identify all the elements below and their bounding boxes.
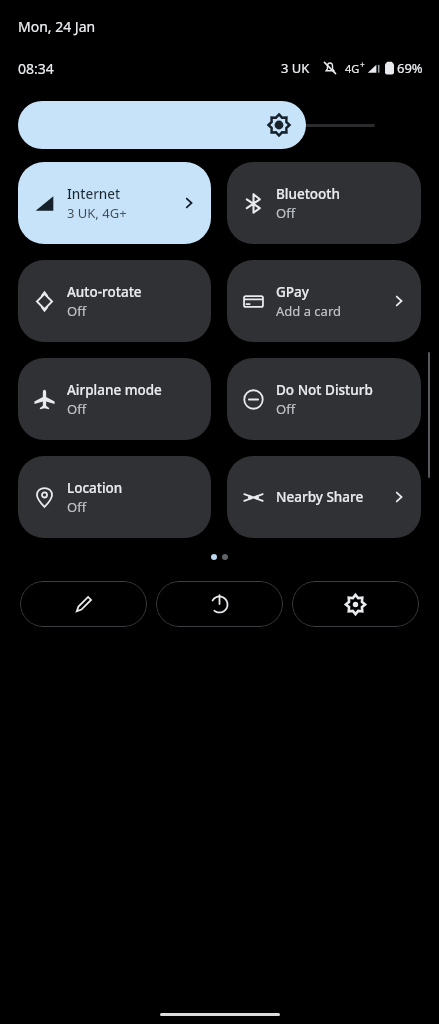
staticText: 3 UK, 4G+: [67, 204, 127, 222]
button[interactable]: Internet: [18, 162, 211, 244]
staticText: Internet: [67, 185, 121, 203]
staticText: Airplane mode: [67, 381, 162, 399]
button[interactable]: Settings: [292, 581, 419, 627]
staticText: Off: [67, 302, 87, 320]
staticText: Off: [67, 498, 87, 516]
staticText: Auto-rotate: [67, 283, 142, 301]
button[interactable]: GPay: [227, 260, 421, 342]
staticText: Off: [276, 400, 296, 418]
staticText: Nearby Share: [276, 488, 364, 506]
button[interactable]: Bluetooth: [227, 162, 421, 244]
button[interactable]: Edit: [20, 581, 147, 627]
button[interactable]: Auto-rotate: [18, 260, 211, 342]
staticText: 08:34: [18, 59, 54, 78]
button[interactable]: Brightness: [18, 101, 306, 149]
button[interactable]: Do Not Disturb: [227, 358, 421, 440]
button[interactable]: Airplane mode: [18, 358, 211, 440]
button[interactable]: Power: [156, 581, 283, 627]
staticText: Do Not Disturb: [276, 381, 373, 399]
button[interactable]: Location: [18, 456, 211, 538]
button[interactable]: Nearby Share: [227, 456, 421, 538]
staticText: Mon, 24 Jan: [18, 17, 96, 36]
staticText: Off: [67, 400, 87, 418]
staticText: Add a card: [276, 302, 341, 320]
staticText: 4G: [345, 61, 360, 76]
staticText: 3 UK: [281, 59, 310, 77]
staticText: Off: [276, 204, 296, 222]
staticText: Location: [67, 479, 123, 497]
staticText: Bluetooth: [276, 185, 340, 203]
staticText: +: [360, 59, 365, 70]
staticText: 69%: [397, 59, 423, 77]
staticText: GPay: [276, 283, 309, 301]
